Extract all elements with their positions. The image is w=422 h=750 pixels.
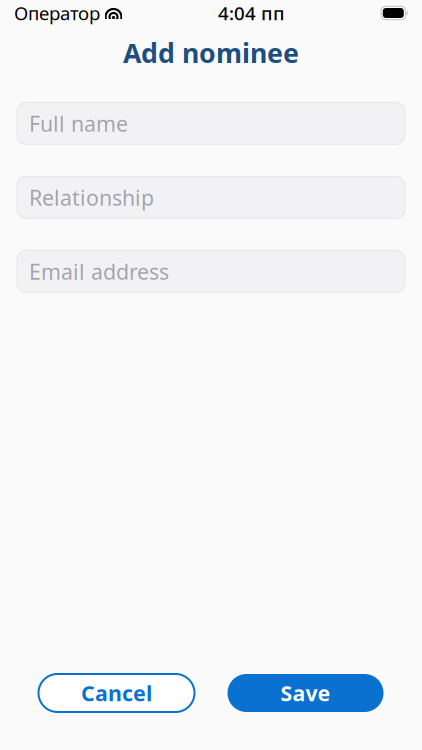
staticText: Add nominee: [123, 35, 299, 70]
button[interactable]: Save: [227, 674, 383, 712]
staticText: Save: [280, 679, 330, 707]
staticText: Оператор: [14, 1, 100, 25]
staticText: Full name: [29, 109, 128, 137]
staticText: Email address: [29, 257, 169, 285]
staticText: Relationship: [29, 183, 154, 211]
staticText: Cancel: [81, 679, 152, 707]
button[interactable]: Cancel: [38, 674, 194, 712]
staticText: 4:04 пп: [218, 1, 285, 25]
